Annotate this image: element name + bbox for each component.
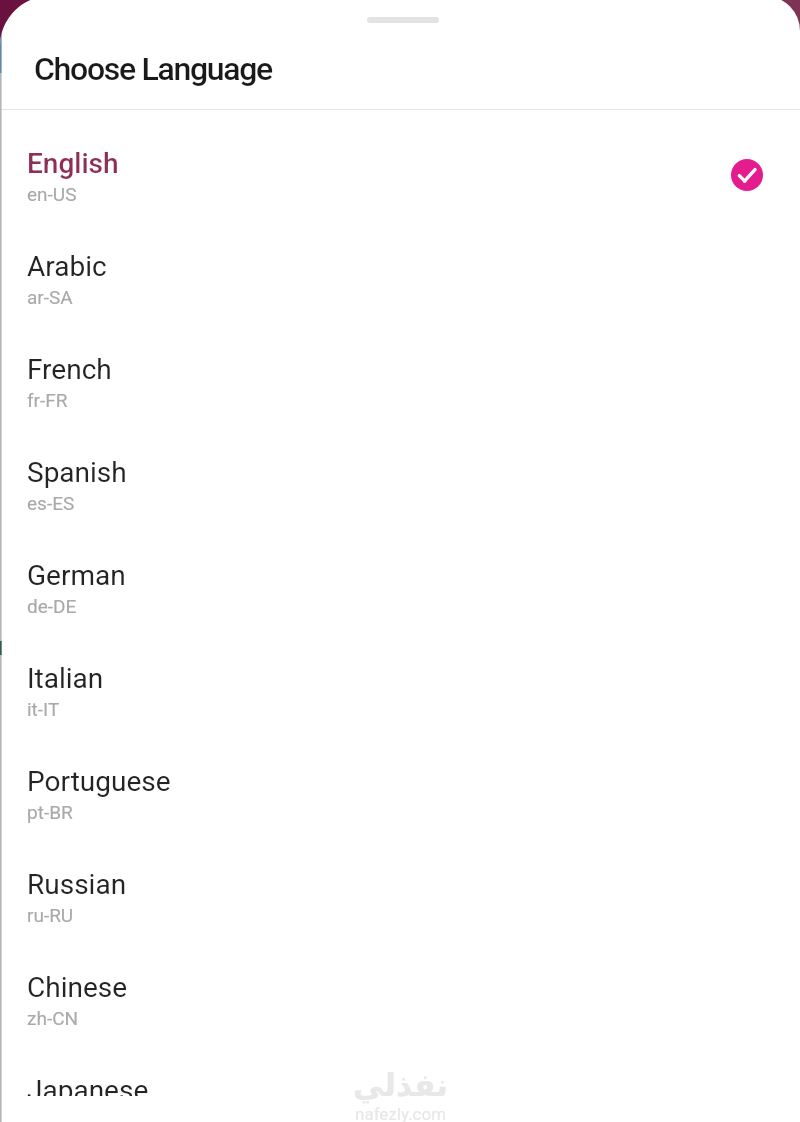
button[interactable]: English (0, 124, 800, 227)
button[interactable]: Russian (0, 845, 800, 948)
button[interactable]: Spanish (0, 433, 800, 536)
staticText: de-DE (27, 595, 77, 617)
staticText: fr-FR (27, 389, 68, 411)
staticText: Spanish (27, 456, 127, 489)
button[interactable]: Chinese (0, 948, 800, 1051)
staticText: Chinese (27, 971, 128, 1004)
button[interactable]: Italian (0, 639, 800, 742)
staticText: Japanese (27, 1074, 149, 1107)
button[interactable]: Arabic (0, 227, 800, 330)
staticText: it-IT (27, 698, 60, 720)
staticText: Italian (27, 662, 104, 695)
staticText: French (27, 353, 112, 386)
button[interactable]: German (0, 536, 800, 639)
staticText: pt-BR (27, 801, 73, 823)
button[interactable]: French (0, 330, 800, 433)
staticText: Choose Language (34, 50, 272, 88)
button[interactable]: Japanese (0, 1051, 800, 1122)
staticText: Arabic (27, 250, 107, 283)
staticText: es-ES (27, 492, 75, 514)
button[interactable]: Portuguese (0, 742, 800, 845)
staticText: نفذلي (353, 1067, 448, 1103)
staticText: ru-RU (27, 904, 74, 926)
staticText: English (27, 147, 119, 180)
staticText: nafezly.com (355, 1104, 447, 1122)
staticText: en-US (27, 183, 77, 205)
staticText: Russian (27, 868, 127, 901)
staticText: ar-SA (27, 286, 73, 308)
other: Selected language (731, 159, 763, 191)
staticText: Portuguese (27, 765, 171, 798)
staticText: German (27, 559, 126, 592)
staticText: zh-CN (27, 1007, 79, 1029)
